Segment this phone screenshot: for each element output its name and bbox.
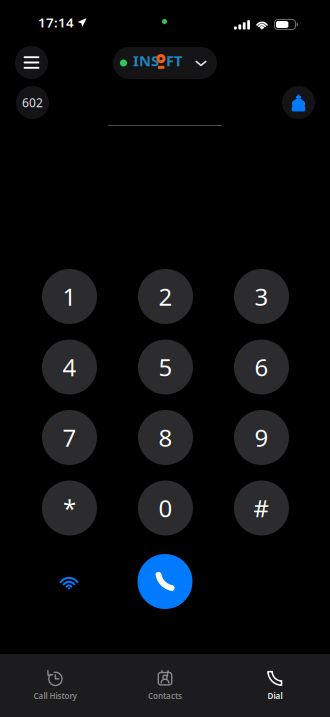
button[interactable]: Dial xyxy=(220,654,330,717)
staticText: 7 xyxy=(62,422,76,453)
button[interactable]: Menu xyxy=(15,46,48,79)
button[interactable]: Call History xyxy=(0,654,110,717)
staticText: 2 xyxy=(158,281,172,312)
staticText: 9 xyxy=(254,422,268,453)
button[interactable]: 6 xyxy=(234,339,289,394)
button[interactable]: 7 xyxy=(42,410,97,465)
button[interactable]: Call xyxy=(137,554,192,609)
button[interactable]: 1 xyxy=(42,269,97,324)
button[interactable]: 602 xyxy=(16,86,49,119)
staticText: 17:14 xyxy=(38,13,74,31)
staticText: FT xyxy=(166,51,182,70)
staticText: 5 xyxy=(158,351,172,383)
staticText: INS xyxy=(133,51,159,70)
button[interactable]: # xyxy=(234,480,289,535)
staticText: 1 xyxy=(62,281,76,312)
button[interactable]: 4 xyxy=(42,339,97,394)
button[interactable]: 8 xyxy=(138,410,193,465)
button[interactable]: Contacts xyxy=(110,654,220,717)
staticText: 6 xyxy=(254,351,268,383)
button[interactable]: 0 xyxy=(138,480,193,535)
staticText: Dial xyxy=(267,691,282,701)
staticText: Contacts xyxy=(148,691,182,701)
staticText: 8 xyxy=(158,422,172,453)
staticText: 0 xyxy=(158,492,172,524)
staticText: 4 xyxy=(62,351,76,383)
button[interactable]: * xyxy=(42,480,97,535)
button[interactable]: Wi-Fi calling xyxy=(47,559,91,603)
button[interactable]: 9 xyxy=(234,410,289,465)
staticText: # xyxy=(253,492,269,524)
staticText: Call History xyxy=(33,691,76,701)
button[interactable]: 2 xyxy=(138,269,193,324)
button[interactable]: 3 xyxy=(234,269,289,324)
button[interactable]: 5 xyxy=(138,339,193,394)
button[interactable]: Premium xyxy=(282,86,315,119)
button[interactable]: INS xyxy=(113,47,217,79)
staticText: * xyxy=(63,492,76,524)
staticText: 602 xyxy=(22,94,43,110)
staticText: 3 xyxy=(254,281,268,312)
